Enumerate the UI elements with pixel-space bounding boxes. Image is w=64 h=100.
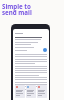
staticText: Simple to send mail (2, 2, 32, 17)
